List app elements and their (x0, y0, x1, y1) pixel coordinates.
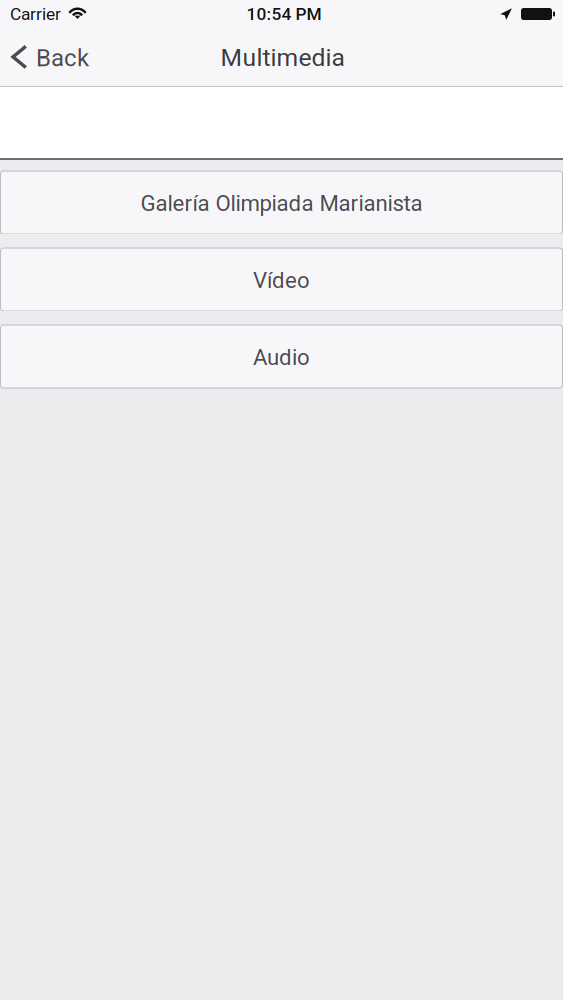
staticText: Galería Olimpiada Marianista (140, 190, 422, 216)
button[interactable]: Vídeo (0, 248, 562, 311)
staticText: 10:54 PM (246, 4, 321, 24)
button[interactable]: Back (0, 28, 103, 86)
staticText: Multimedia (220, 43, 344, 72)
staticText: Back (36, 44, 89, 72)
button[interactable]: Audio (0, 325, 562, 388)
staticText: Audio (253, 344, 310, 370)
staticText: Carrier (10, 4, 61, 24)
button[interactable]: Galería Olimpiada Marianista (0, 171, 562, 234)
staticText: Vídeo (253, 267, 310, 293)
